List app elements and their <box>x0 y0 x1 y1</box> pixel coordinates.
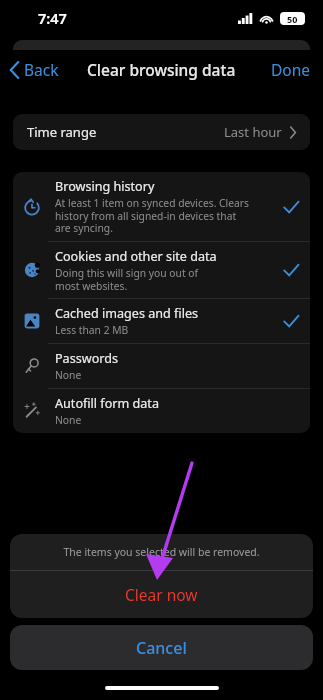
staticText: None <box>55 413 82 427</box>
button[interactable]: Time range <box>13 114 310 150</box>
button[interactable]: Passwords <box>13 344 310 388</box>
staticText: Last hour <box>224 123 282 141</box>
staticText: Less than 2 MB <box>55 323 129 337</box>
button[interactable]: Cookies and other site data <box>13 242 310 298</box>
staticText: Back <box>24 59 59 80</box>
button[interactable]: Browsing history <box>13 172 310 241</box>
button[interactable]: Done <box>265 55 317 84</box>
button[interactable]: Autofill form data <box>13 389 310 433</box>
staticText: 7:47 <box>38 8 67 28</box>
staticText: At least 1 item on synced devices. Clear… <box>55 196 250 235</box>
staticText: Cancel <box>136 637 187 659</box>
staticText: 50 <box>287 13 298 25</box>
staticText: Cookies and other site data <box>55 248 217 265</box>
staticText: Clear browsing data <box>87 59 236 80</box>
staticText: Time range <box>27 123 97 141</box>
staticText: Browsing history <box>55 178 155 195</box>
staticText: Done <box>271 59 311 80</box>
button[interactable]: Back <box>6 55 63 84</box>
button[interactable]: Cached images and files <box>13 299 310 343</box>
staticText: Autofill form data <box>55 395 159 412</box>
staticText: Doing this will sign you out of most web… <box>55 266 199 293</box>
staticText: Clear now <box>125 584 198 605</box>
button[interactable]: Cancel <box>10 625 313 670</box>
staticText: Cached images and files <box>55 305 199 322</box>
staticText: Passwords <box>55 350 118 367</box>
staticText: None <box>55 368 82 382</box>
button[interactable]: Clear now <box>10 571 313 618</box>
staticText: The items you selected will be removed. <box>63 545 260 559</box>
